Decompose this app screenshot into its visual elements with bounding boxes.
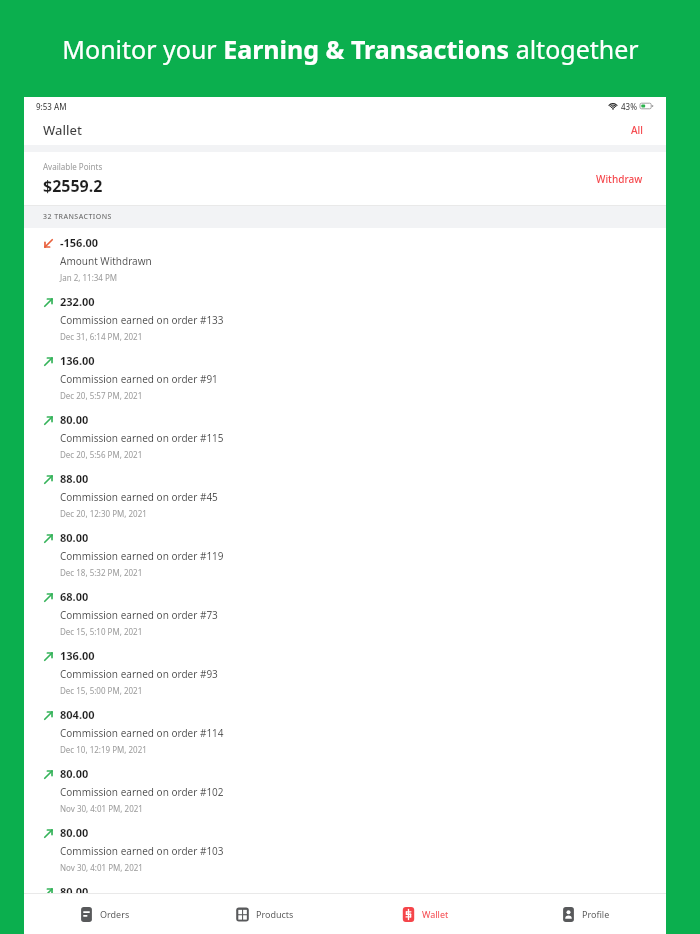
staticText: Commission earned on order #115 (60, 431, 224, 445)
staticText: Products (256, 908, 294, 920)
staticText: Wallet (43, 121, 82, 139)
staticText: Commission earned on order #73 (60, 608, 218, 622)
staticText: Withdraw (596, 172, 643, 186)
button[interactable]: 80.00 (24, 523, 666, 582)
button[interactable]: 80.00 (24, 877, 666, 893)
staticText: Nov 30, 4:01 PM, 2021 (60, 803, 143, 814)
button[interactable]: 136.00 (24, 641, 666, 700)
staticText: Amount Withdrawn (60, 254, 152, 268)
button[interactable]: All (627, 118, 647, 142)
button[interactable]: 68.00 (24, 582, 666, 641)
staticText: Profile (582, 908, 610, 920)
staticText: 80.00 (60, 766, 89, 781)
staticText: 80.00 (60, 825, 89, 840)
staticText: Available Points (43, 161, 103, 172)
staticText: Dec 20, 5:56 PM, 2021 (60, 449, 143, 460)
button[interactable]: 80.00 (24, 405, 666, 464)
staticText: Commission earned on order #93 (60, 667, 218, 681)
staticText: 32 TRANSACTIONS (43, 212, 112, 222)
staticText: 136.00 (60, 648, 95, 663)
button[interactable]: -156.00 (24, 228, 666, 287)
button[interactable]: Withdraw (592, 166, 647, 192)
button[interactable]: 80.00 (24, 759, 666, 818)
button[interactable]: 80.00 (24, 818, 666, 877)
staticText: Dec 10, 12:19 PM, 2021 (60, 744, 147, 755)
button[interactable]: 136.00 (24, 346, 666, 405)
staticText: 232.00 (60, 294, 95, 309)
button[interactable]: 88.00 (24, 464, 666, 523)
staticText: Commission earned on order #103 (60, 844, 224, 858)
staticText: Commission earned on order #133 (60, 313, 224, 327)
staticText: All (631, 123, 643, 137)
staticText: Commission earned on order #45 (60, 490, 218, 504)
staticText: Dec 20, 5:57 PM, 2021 (60, 390, 143, 401)
button[interactable]: 804.00 (24, 700, 666, 759)
staticText: Commission earned on order #114 (60, 726, 224, 740)
staticText: 136.00 (60, 353, 95, 368)
staticText: 9:53 AM (36, 101, 67, 112)
staticText: Commission earned on order #91 (60, 372, 218, 386)
staticText: 80.00 (60, 884, 89, 893)
staticText: Nov 30, 4:01 PM, 2021 (60, 862, 143, 873)
staticText: Orders (100, 908, 130, 920)
staticText: 804.00 (60, 707, 95, 722)
button[interactable]: 232.00 (24, 287, 666, 346)
staticText: 80.00 (60, 530, 89, 545)
staticText: 80.00 (60, 412, 89, 427)
staticText: Dec 15, 5:00 PM, 2021 (60, 685, 143, 696)
button[interactable]: Orders (24, 894, 184, 934)
button[interactable]: Wallet (344, 894, 505, 934)
staticText: Jan 2, 11:34 PM (60, 272, 118, 283)
staticText: 43% (621, 101, 637, 112)
button[interactable]: Profile (505, 894, 666, 934)
staticText: Dec 31, 6:14 PM, 2021 (60, 331, 143, 342)
staticText: Commission earned on order #102 (60, 785, 224, 799)
staticText: 68.00 (60, 589, 89, 604)
staticText: Dec 18, 5:32 PM, 2021 (60, 567, 143, 578)
staticText: $2559.2 (43, 175, 103, 197)
staticText: Dec 20, 12:30 PM, 2021 (60, 508, 147, 519)
staticText: -156.00 (60, 235, 99, 250)
button[interactable]: Products (184, 894, 344, 934)
staticText: Wallet (422, 908, 449, 920)
staticText: Dec 15, 5:10 PM, 2021 (60, 626, 143, 637)
staticText: Monitor your Earning & Transactions alto… (62, 32, 639, 66)
staticText: 88.00 (60, 471, 89, 486)
staticText: Commission earned on order #119 (60, 549, 224, 563)
